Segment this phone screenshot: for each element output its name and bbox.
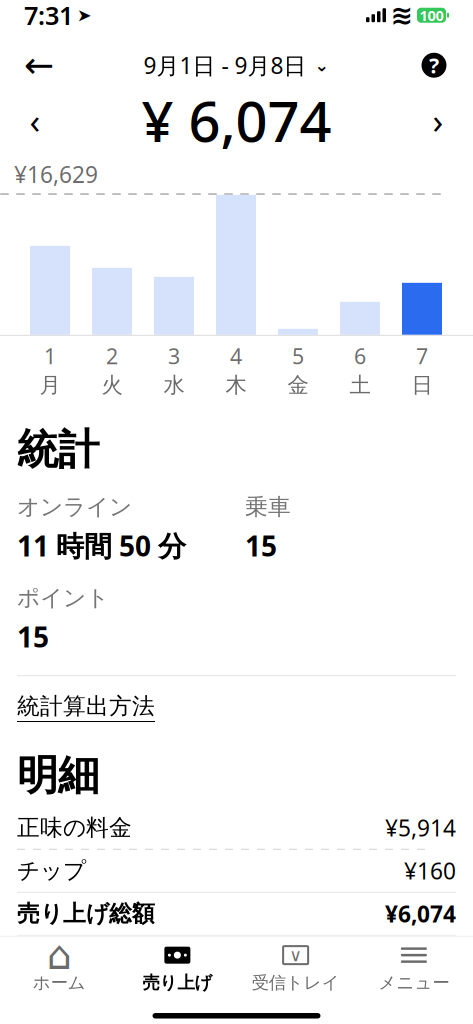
staticText: ⌄: [314, 55, 329, 75]
button[interactable]: 統計算出方法: [17, 690, 155, 724]
staticText: 日: [411, 372, 432, 398]
staticText: ¥5,914: [385, 813, 456, 843]
button[interactable]: 9月1日 - 9月8日: [137, 43, 335, 87]
staticText: オンライン: [17, 493, 132, 521]
staticText: ←: [24, 45, 54, 86]
staticText: ≋: [390, 0, 412, 30]
staticText: ¥ 6,074: [141, 83, 331, 157]
staticText: 月: [39, 372, 60, 398]
staticText: 統計算出方法: [17, 692, 155, 720]
staticText: 4: [230, 342, 242, 370]
button[interactable]: ⌂: [0, 934, 118, 1001]
staticText: 統計: [17, 424, 99, 475]
staticText: 受信トレイ: [252, 972, 340, 993]
staticText: 明細: [17, 750, 99, 801]
staticText: ∨: [289, 945, 302, 965]
staticText: 正味の料金: [17, 814, 132, 842]
staticText: ➤: [77, 5, 92, 25]
button[interactable]: 戻る: [17, 43, 61, 87]
staticText: チップ: [17, 857, 86, 885]
staticText: 2: [106, 342, 118, 370]
staticText: 7:31: [24, 0, 73, 32]
button[interactable]: ヘルプ: [412, 43, 456, 87]
staticText: 6: [354, 342, 366, 370]
staticText: ‹: [29, 97, 40, 143]
staticText: 1: [44, 342, 56, 370]
staticText: 火: [101, 372, 122, 398]
staticText: ホーム: [33, 972, 86, 993]
staticText: 売り上げ: [142, 972, 212, 993]
staticText: 7: [416, 342, 428, 370]
button[interactable]: 前の週: [15, 96, 55, 144]
button[interactable]: 次の週: [418, 96, 458, 144]
staticText: 5: [292, 342, 304, 370]
staticText: ⌂: [47, 932, 72, 978]
staticText: 100: [419, 5, 443, 25]
staticText: ¥16,629: [14, 159, 98, 189]
staticText: ¥160: [404, 856, 456, 886]
staticText: 9月1日 - 9月8日: [143, 50, 306, 80]
staticText: ¥6,074: [385, 899, 456, 929]
staticText: 15: [17, 618, 49, 655]
staticText: 15: [245, 527, 277, 564]
button[interactable]: メニュー: [355, 934, 473, 1001]
staticText: 3: [168, 342, 180, 370]
staticText: 土: [349, 372, 370, 398]
staticText: 乗車: [245, 493, 291, 521]
staticText: 金: [287, 372, 308, 398]
staticText: ?: [429, 51, 439, 79]
staticText: 水: [163, 372, 184, 398]
button[interactable]: 売り上げ: [118, 934, 236, 1001]
staticText: ポイント: [17, 584, 109, 612]
staticText: 売り上げ総額: [17, 900, 155, 928]
staticText: メニュー: [378, 972, 449, 993]
staticText: 木: [225, 372, 246, 398]
staticText: ›: [432, 97, 443, 143]
button[interactable]: ∨: [236, 934, 355, 1001]
staticText: 11 時間 50 分: [17, 527, 186, 564]
